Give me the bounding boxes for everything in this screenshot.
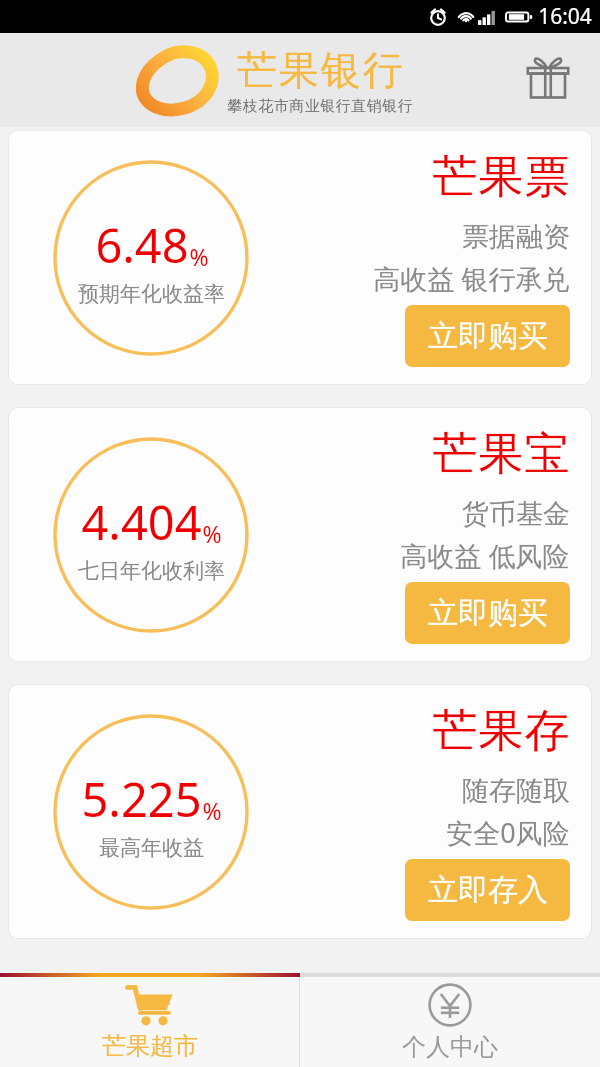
staticText: 4.404 [81, 490, 202, 554]
staticText: 票据融资 [462, 220, 570, 254]
staticText: 立即存入 [428, 871, 548, 909]
staticText: 随存随取 [462, 774, 570, 808]
staticText: 芒果宝 [432, 426, 570, 483]
staticText: 16:04 [538, 2, 592, 31]
button[interactable]: 4.404 [8, 407, 592, 662]
button[interactable]: 立即购买 [405, 305, 570, 367]
staticText: 芒果票 [432, 149, 570, 206]
staticText: 最高年收益 [99, 835, 204, 861]
button[interactable]: 立即购买 [405, 582, 570, 644]
staticText: 货币基金 [462, 497, 570, 531]
button[interactable]: 5.225 [8, 684, 592, 939]
staticText: 立即购买 [428, 317, 548, 355]
staticText: 安全0风险 [446, 814, 570, 851]
staticText: 个人中心 [402, 1032, 498, 1062]
staticText: 芒果银行 [236, 45, 404, 95]
button[interactable]: 芒果超市 [0, 977, 299, 1067]
staticText: 芒果存 [432, 703, 570, 760]
button[interactable]: 个人中心 [300, 977, 600, 1067]
staticText: % [189, 241, 209, 272]
staticText: 高收益 低风险 [400, 537, 570, 574]
staticText: 立即购买 [428, 594, 548, 632]
staticText: % [202, 518, 222, 549]
button[interactable]: 立即存入 [405, 859, 570, 921]
staticText: % [202, 795, 222, 826]
staticText: 6.48 [95, 213, 189, 277]
staticText: 高收益 银行承兑 [373, 260, 570, 297]
button[interactable]: 礼品 Gifts [522, 54, 574, 106]
staticText: 攀枝花市商业银行直销银行 [227, 97, 413, 116]
staticText: 七日年化收利率 [78, 558, 225, 584]
staticText: 芒果超市 [102, 1031, 198, 1061]
button[interactable]: 6.48 [8, 130, 592, 385]
staticText: 预期年化收益率 [78, 281, 225, 307]
staticText: 5.225 [81, 767, 202, 831]
